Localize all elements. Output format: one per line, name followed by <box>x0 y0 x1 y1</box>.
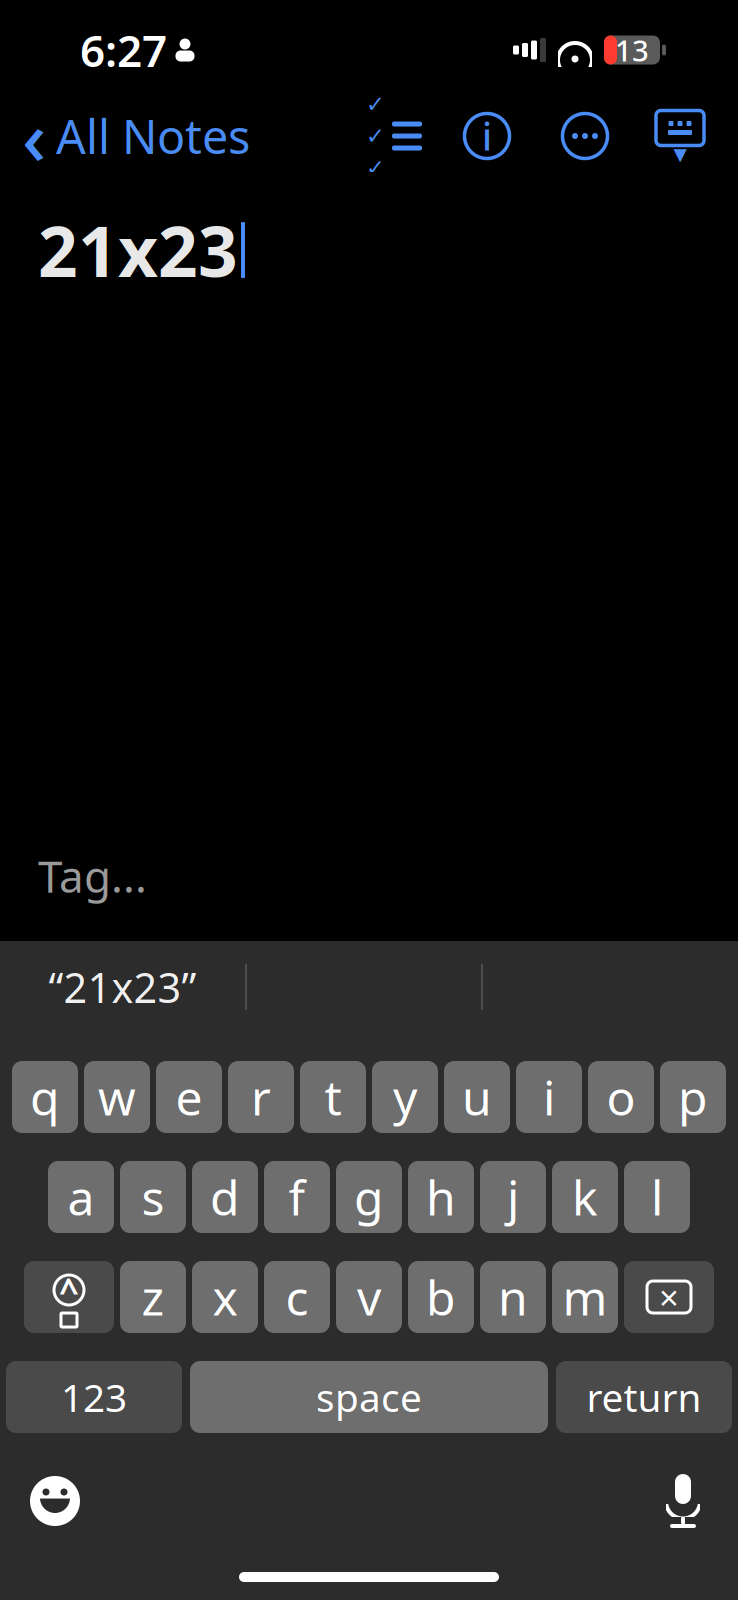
button[interactable]: h <box>408 1161 474 1233</box>
staticText: space <box>316 1371 422 1423</box>
staticText: y <box>393 1065 417 1129</box>
staticText: h <box>426 1165 456 1229</box>
staticText: 123 <box>61 1371 127 1423</box>
staticText: d <box>210 1165 240 1229</box>
staticText: ✓ <box>366 123 385 149</box>
button[interactable]: b <box>408 1261 474 1333</box>
staticText: c <box>285 1265 308 1329</box>
button[interactable]: j <box>480 1161 546 1233</box>
button[interactable]: Numbers <box>6 1361 182 1433</box>
button[interactable]: k <box>552 1161 618 1233</box>
button[interactable]: d <box>192 1161 258 1233</box>
button[interactable]: “21x23” <box>0 941 245 1033</box>
staticText: f <box>288 1165 305 1229</box>
button[interactable]: Delete <box>624 1261 714 1333</box>
staticText: s <box>141 1165 164 1229</box>
staticText: ‹ <box>22 86 46 186</box>
staticText: o <box>606 1065 635 1129</box>
button[interactable]: a <box>48 1161 114 1233</box>
staticText: k <box>572 1165 598 1229</box>
button[interactable]: i <box>516 1061 582 1133</box>
staticText: t <box>324 1065 341 1129</box>
staticText: j <box>507 1165 519 1229</box>
staticText: 13 <box>615 30 649 69</box>
staticText: Tag... <box>38 847 147 905</box>
staticText: q <box>30 1065 60 1129</box>
button[interactable]: y <box>372 1061 438 1133</box>
button[interactable]: Emoji <box>0 1456 110 1546</box>
button[interactable]: Tag... <box>0 839 147 913</box>
staticText: z <box>141 1265 164 1329</box>
staticText: ✓ <box>366 91 385 117</box>
button[interactable]: x <box>192 1261 258 1333</box>
button[interactable]: Return <box>556 1361 732 1433</box>
button[interactable]: n <box>480 1261 546 1333</box>
staticText: All Notes <box>56 105 250 167</box>
button[interactable]: r <box>228 1061 294 1133</box>
staticText: m <box>562 1265 607 1329</box>
button[interactable]: Dictate <box>628 1456 738 1546</box>
button[interactable]: u <box>444 1061 510 1133</box>
staticText: u <box>462 1065 492 1129</box>
staticText: “21x23” <box>48 960 196 1014</box>
button[interactable]: ‹ <box>0 104 260 168</box>
staticText: return <box>586 1371 701 1423</box>
staticText: 6:27 <box>80 21 167 79</box>
button[interactable]: m <box>552 1261 618 1333</box>
button[interactable]: t <box>300 1061 366 1133</box>
staticText: e <box>175 1065 202 1129</box>
staticText: ✓ <box>366 155 385 181</box>
button[interactable]: Shift <box>24 1261 114 1333</box>
button[interactable]: e <box>156 1061 222 1133</box>
button[interactable]: Hide Keyboard <box>634 104 726 168</box>
staticText: n <box>498 1265 528 1329</box>
button[interactable]: s <box>120 1161 186 1233</box>
staticText: a <box>67 1165 94 1229</box>
staticText: l <box>651 1165 663 1229</box>
staticText: b <box>426 1265 456 1329</box>
button[interactable]: p <box>660 1061 726 1133</box>
staticText: r <box>251 1065 271 1129</box>
button[interactable]: l <box>624 1161 690 1233</box>
button[interactable]: Checklist <box>350 104 438 168</box>
button[interactable]: z <box>120 1261 186 1333</box>
staticText: × <box>659 1274 679 1320</box>
staticText: w <box>98 1065 136 1129</box>
staticText: g <box>354 1165 384 1229</box>
staticText: ^ <box>59 1267 79 1313</box>
button[interactable]: c <box>264 1261 330 1333</box>
button[interactable]: More <box>536 104 634 168</box>
staticText: i <box>543 1065 555 1129</box>
button[interactable]: Space <box>190 1361 548 1433</box>
staticText: v <box>357 1265 381 1329</box>
staticText: 21x23 <box>38 204 238 296</box>
button[interactable]: v <box>336 1261 402 1333</box>
button[interactable]: w <box>84 1061 150 1133</box>
staticText: p <box>678 1065 708 1129</box>
button[interactable]: g <box>336 1161 402 1233</box>
button[interactable]: Format <box>438 104 536 168</box>
staticText: i <box>482 111 492 161</box>
button[interactable]: q <box>12 1061 78 1133</box>
button[interactable]: o <box>588 1061 654 1133</box>
staticText: x <box>212 1265 237 1329</box>
staticText: ▾ <box>673 138 686 169</box>
button[interactable]: f <box>264 1161 330 1233</box>
